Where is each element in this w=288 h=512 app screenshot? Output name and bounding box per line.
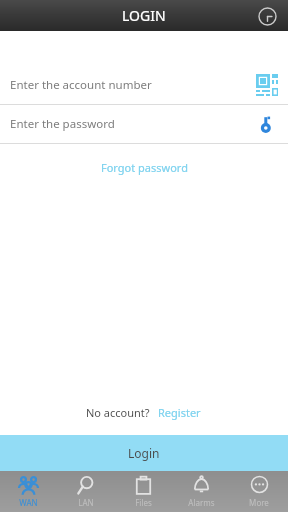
- staticText: Enter the account number: [10, 77, 254, 93]
- button[interactable]: Register: [156, 402, 203, 423]
- button[interactable]: Login: [0, 435, 288, 471]
- staticText: Files: [135, 497, 152, 508]
- staticText: LOGIN: [122, 6, 166, 25]
- button[interactable]: Enter the account number: [0, 66, 288, 104]
- button[interactable]: More: [230, 471, 288, 512]
- button[interactable]: LAN: [57, 471, 114, 512]
- staticText: WAN: [19, 497, 38, 508]
- staticText: No account?: [86, 405, 150, 420]
- staticText: More: [249, 497, 269, 508]
- staticText: Enter the password: [10, 116, 254, 132]
- staticText: LAN: [78, 497, 94, 508]
- button[interactable]: Forgot password: [91, 156, 198, 179]
- button[interactable]: Enter the password: [0, 105, 288, 143]
- button[interactable]: Scan QR code: [254, 72, 280, 98]
- staticText: Register: [158, 405, 201, 420]
- button[interactable]: Clock: [254, 3, 280, 29]
- staticText: Alarms: [188, 497, 215, 508]
- staticText: Forgot password: [101, 160, 188, 175]
- button[interactable]: WAN: [0, 471, 57, 512]
- button[interactable]: Files: [114, 471, 172, 512]
- button[interactable]: Show password: [254, 111, 280, 137]
- button[interactable]: Alarms: [172, 471, 230, 512]
- staticText: Login: [128, 445, 160, 461]
